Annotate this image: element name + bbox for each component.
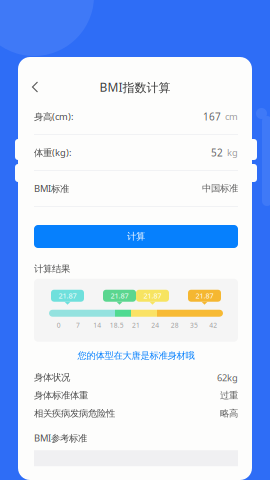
staticText: 中国标准	[202, 183, 238, 194]
staticText: 167	[203, 110, 221, 123]
button[interactable]: 计算	[34, 225, 238, 248]
staticText: 52	[211, 146, 223, 159]
staticText: 您的体型在大唐是标准身材哦	[77, 350, 194, 362]
staticText: 24	[151, 321, 159, 330]
staticText: kg	[223, 146, 238, 159]
staticText: 28	[171, 321, 179, 330]
staticText: 计算	[127, 231, 145, 242]
staticText: 14	[93, 321, 101, 330]
staticText: BMI指数计算	[99, 79, 170, 95]
staticText: cm	[221, 110, 238, 123]
staticText: 42	[209, 321, 217, 330]
staticText: 身高(cm):	[34, 110, 74, 123]
staticText: 21.87	[195, 291, 213, 301]
staticText: 21.87	[143, 291, 161, 301]
staticText: 计算结果	[34, 263, 70, 275]
staticText: 21.87	[110, 291, 128, 301]
staticText: 身体标准体重	[34, 390, 88, 401]
staticText: BMI标准	[34, 182, 69, 195]
staticText: 略高	[220, 408, 238, 419]
staticText: BMI参考标准	[34, 431, 87, 444]
staticText: 18.5	[110, 321, 124, 330]
staticText: 21	[132, 321, 140, 330]
staticText: 7	[76, 321, 80, 330]
staticText: 21.87	[58, 291, 76, 301]
staticText: 过重	[220, 390, 238, 401]
staticText: 体重(kg):	[34, 146, 72, 159]
staticText: 62kg	[217, 371, 238, 384]
staticText: 0	[57, 321, 61, 330]
staticText: 相关疾病发病危险性	[34, 408, 115, 419]
staticText: 35	[190, 321, 198, 330]
staticText: 身体状况	[34, 372, 70, 383]
button[interactable]: Back	[18, 75, 52, 99]
